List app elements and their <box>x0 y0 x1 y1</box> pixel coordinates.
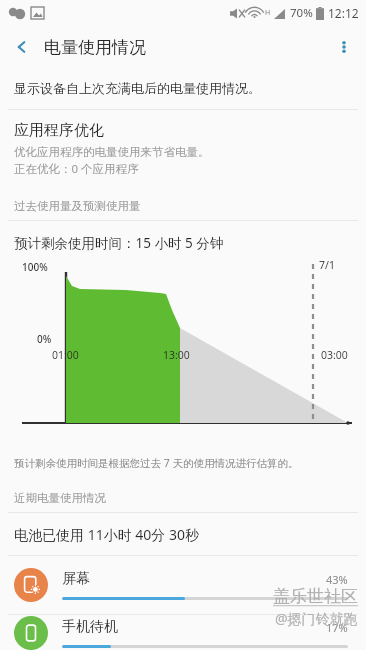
staticText: 电池已使用 11小时 40分 30秒 <box>14 525 199 544</box>
staticText: 100% <box>22 260 48 274</box>
staticText: 盖乐世社区 <box>273 586 358 607</box>
staticText: 13:00 <box>163 348 190 362</box>
staticText: 优化应用程序的电量使用来节省电量。 <box>14 145 210 159</box>
button[interactable]: 屏幕 <box>0 556 366 614</box>
button[interactable]: 应用程序优化 <box>0 110 366 185</box>
staticText: 屏幕 <box>62 570 326 588</box>
button[interactable]: More options <box>322 26 366 68</box>
staticText: 17% <box>326 620 348 635</box>
staticText: 7/1 <box>319 258 335 272</box>
staticText: 0% <box>37 332 52 346</box>
staticText: 预计剩余使用时间是根据您过去 7 天的使用情况进行估算的。 <box>14 456 299 470</box>
staticText: 预计剩余使用时间：15 小时 5 分钟 <box>14 234 224 252</box>
staticText: 近期电量使用情况 <box>14 491 106 505</box>
button[interactable]: 手机待机 <box>0 615 366 650</box>
staticText: 01:00 <box>52 348 79 362</box>
staticText: 12:12 <box>328 5 359 21</box>
staticText: 应用程序优化 <box>14 121 104 140</box>
staticText: 43% <box>326 572 348 587</box>
staticText: H <box>265 8 271 18</box>
staticText: 正在优化：0 个应用程序 <box>14 161 139 177</box>
staticText: 手机待机 <box>62 618 326 636</box>
staticText: @摁门铃就跑 <box>275 609 358 628</box>
button[interactable]: Back <box>0 26 44 68</box>
staticText: 过去使用量及预测使用量 <box>14 199 141 213</box>
staticText: 电量使用情况 <box>44 37 146 58</box>
staticText: 显示设备自上次充满电后的电量使用情况。 <box>14 80 261 96</box>
staticText: 70% <box>290 5 313 21</box>
staticText: 03:00 <box>321 348 348 362</box>
